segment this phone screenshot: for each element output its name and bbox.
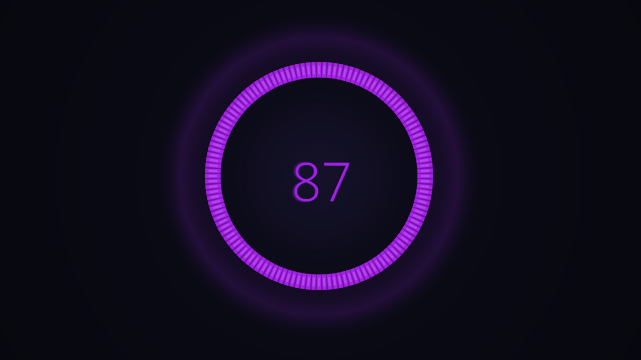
staticText: 87 <box>291 144 352 216</box>
staticText: 87 <box>289 142 353 218</box>
button[interactable]: Progress gauge, 87 percent <box>0 0 641 360</box>
